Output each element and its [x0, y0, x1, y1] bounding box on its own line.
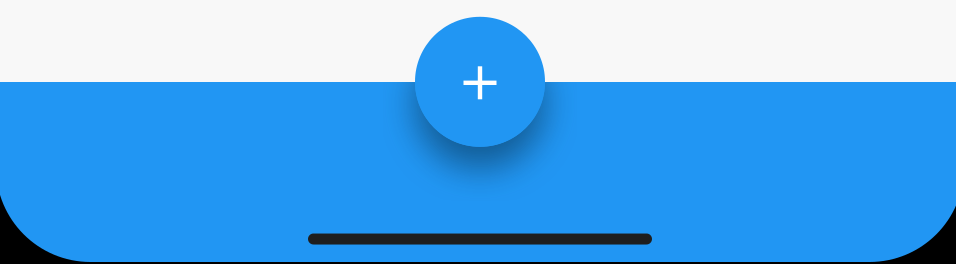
button[interactable]: Add [415, 17, 545, 147]
